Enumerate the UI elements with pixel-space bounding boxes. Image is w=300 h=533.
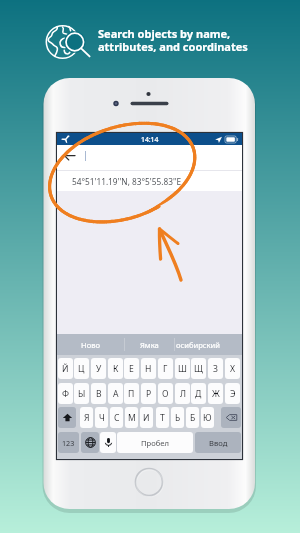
button[interactable]: Щ (191, 358, 206, 379)
button[interactable]: И (140, 407, 153, 428)
staticText: Д (195, 388, 202, 400)
button[interactable]: Б (186, 407, 199, 428)
button[interactable]: Backspace (221, 407, 241, 428)
staticText: Ю (203, 412, 212, 424)
button[interactable]: Э (225, 383, 240, 404)
button[interactable]: Shift (58, 407, 76, 428)
staticText: П (128, 388, 135, 400)
staticText: Е (129, 363, 134, 375)
button[interactable]: Change language (81, 432, 99, 453)
button[interactable]: Ввод (195, 432, 241, 453)
staticText: З (213, 363, 218, 375)
button[interactable]: Д (191, 383, 206, 404)
staticText: М (128, 412, 136, 424)
staticText: 54°51'11.19''N, 83°5'55.83''E (72, 176, 182, 187)
button[interactable]: Back (64, 150, 76, 162)
button[interactable]: 123 (58, 432, 79, 453)
button[interactable]: 54°51'11.19''N, 83°5'55.83''E (57, 171, 242, 191)
staticText: 14:14 (141, 135, 159, 144)
button[interactable]: Л (175, 383, 190, 404)
button[interactable]: З (208, 358, 223, 379)
staticText: И (143, 412, 150, 424)
button[interactable]: С (110, 407, 123, 428)
button[interactable]: В (91, 383, 106, 404)
button[interactable]: К (108, 358, 123, 379)
button[interactable]: М (125, 407, 138, 428)
button[interactable]: Й (58, 358, 73, 379)
staticText: Ново (81, 340, 100, 350)
staticText: Ж (212, 388, 220, 400)
staticText: Ц (78, 363, 85, 375)
staticText: Ш (178, 363, 187, 375)
staticText: Search objects by name, (98, 26, 231, 41)
button[interactable]: Я (80, 407, 93, 428)
button[interactable]: Ново (57, 334, 124, 355)
button[interactable]: А (108, 383, 123, 404)
button[interactable]: Ь (171, 407, 184, 428)
other: Airplane mode (61, 135, 70, 144)
staticText: Р (146, 388, 152, 400)
staticText: Ямка (140, 340, 159, 350)
button[interactable]: Е (124, 358, 139, 379)
staticText: Ч (99, 412, 105, 424)
staticText: К (113, 363, 119, 375)
button[interactable]: Ш (175, 358, 190, 379)
staticText: Б (190, 412, 196, 424)
staticText: Щ (194, 363, 203, 375)
staticText: У (96, 363, 102, 375)
staticText: О (162, 388, 169, 400)
staticText: Пробел (141, 438, 169, 448)
button[interactable]: Ы (74, 383, 89, 404)
staticText: С (114, 412, 120, 424)
button[interactable]: Ц (74, 358, 89, 379)
button[interactable]: О (158, 383, 173, 404)
staticText: Ф (62, 388, 70, 400)
button[interactable]: Р (141, 383, 156, 404)
staticText: attributes, and coordinates (98, 39, 248, 54)
button[interactable]: Т (156, 407, 169, 428)
button[interactable]: Н (141, 358, 156, 379)
button[interactable]: Back (57, 145, 242, 170)
button[interactable]: Г (158, 358, 173, 379)
staticText: Ь (175, 412, 181, 424)
staticText: Х (230, 363, 236, 375)
button[interactable]: У (91, 358, 106, 379)
staticText: Т (160, 412, 165, 424)
staticText: Л (180, 388, 186, 400)
button[interactable]: Ж (208, 383, 223, 404)
button[interactable]: Ю (201, 407, 214, 428)
button[interactable]: Пробел (117, 432, 193, 453)
button[interactable]: Х (225, 358, 240, 379)
button[interactable]: Ч (95, 407, 108, 428)
staticText: 123 (62, 438, 75, 448)
button[interactable]: Ф (58, 383, 73, 404)
staticText: Я (84, 412, 90, 424)
button[interactable]: П (124, 383, 139, 404)
staticText: Г (163, 363, 168, 375)
button[interactable]: Dictate (100, 432, 116, 453)
staticText: Э (230, 388, 236, 400)
staticText: Й (62, 363, 69, 375)
staticText: Ввод (209, 438, 228, 448)
staticText: осибирский (176, 340, 221, 350)
staticText: А (113, 388, 119, 400)
staticText: Ы (78, 388, 86, 400)
button[interactable]: осибирский (175, 334, 242, 355)
button[interactable]: Ямка (125, 334, 174, 355)
staticText: Н (145, 363, 152, 375)
staticText: В (96, 388, 102, 400)
